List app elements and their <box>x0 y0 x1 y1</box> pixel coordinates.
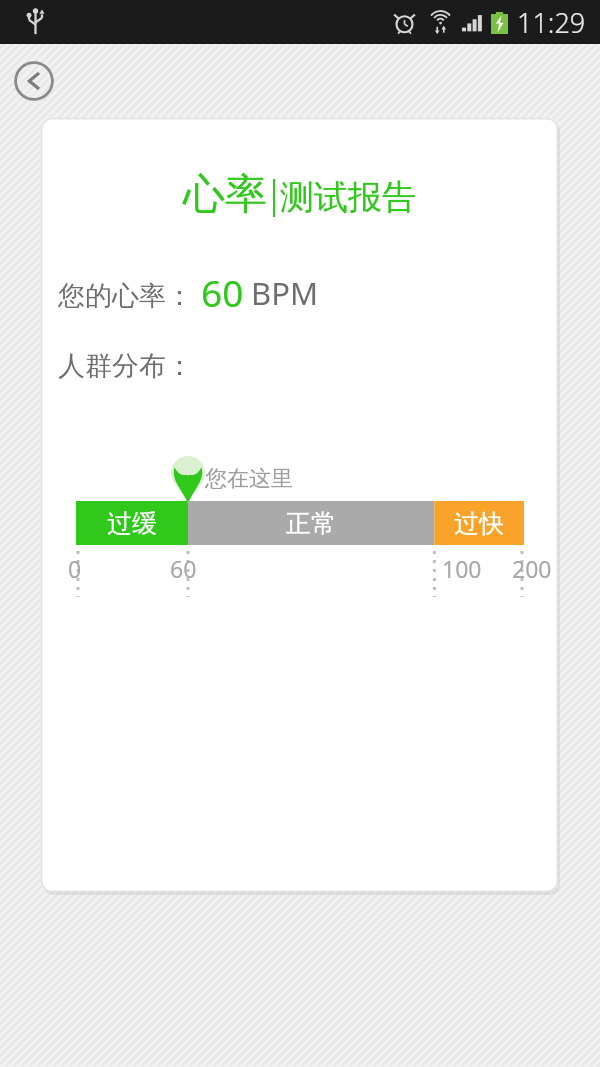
staticText: 60 <box>201 267 244 317</box>
staticText: 0 <box>68 553 82 584</box>
staticText: 人群分布： <box>58 349 193 383</box>
staticText: 100 <box>442 553 482 584</box>
staticText: 200 <box>512 553 552 584</box>
button[interactable]: 正常 <box>188 501 434 545</box>
staticText: 您在这里 <box>205 465 293 493</box>
staticText: 心率 <box>183 168 267 221</box>
staticText: 过缓 <box>107 508 157 539</box>
staticText: 您的心率： <box>58 279 193 313</box>
button[interactable]: Back <box>13 60 55 102</box>
staticText: 过快 <box>454 508 504 539</box>
staticText: 正常 <box>286 508 336 539</box>
button[interactable]: 过缓 <box>76 501 188 545</box>
staticText: BPM <box>251 272 319 314</box>
staticText: 11:29 <box>517 4 586 41</box>
staticText: 测试报告 <box>280 176 416 219</box>
staticText: 60 <box>170 553 197 584</box>
button[interactable]: 过快 <box>434 501 524 545</box>
